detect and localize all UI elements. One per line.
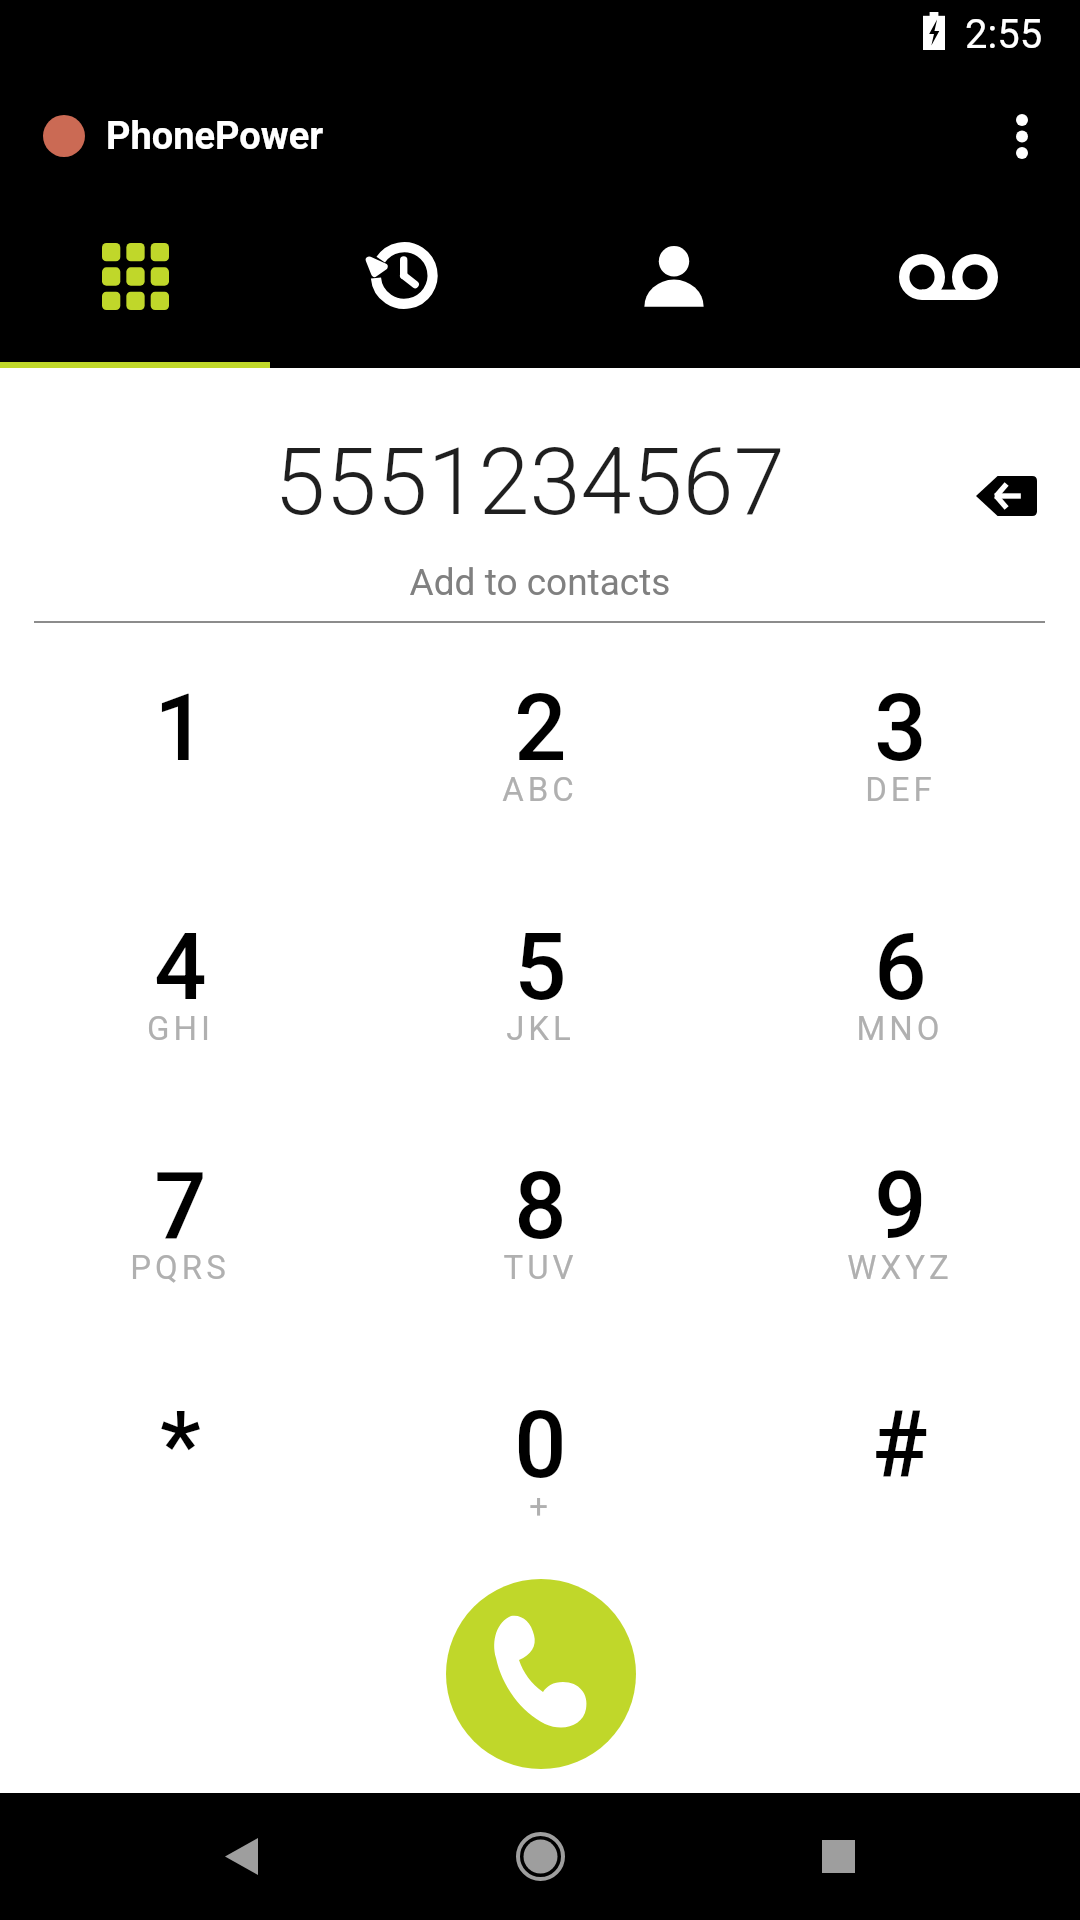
staticText: ABC	[502, 770, 578, 809]
staticText: *	[160, 1392, 201, 1500]
staticText: JKL	[506, 1009, 575, 1048]
staticText: WXYZ	[847, 1248, 953, 1287]
staticText: #	[872, 1392, 928, 1500]
staticText: 1	[154, 675, 207, 783]
staticText: 8	[514, 1153, 567, 1261]
button[interactable]: Contacts	[540, 190, 810, 362]
staticText: PQRS	[130, 1248, 230, 1287]
button[interactable]: Recent apps	[778, 1793, 898, 1920]
staticText: PhonePower	[106, 114, 324, 159]
staticText: 3	[874, 675, 927, 783]
staticText: 5	[514, 914, 567, 1022]
button[interactable]: *	[0, 1374, 360, 1613]
button[interactable]: 7	[0, 1135, 360, 1374]
staticText: 6	[874, 914, 927, 1022]
staticText: 7	[154, 1153, 207, 1261]
button[interactable]: 1	[0, 657, 360, 896]
button[interactable]: Call	[446, 1579, 636, 1769]
button[interactable]: 0	[360, 1374, 720, 1613]
button[interactable]: 3	[720, 657, 1080, 896]
button[interactable]: 9	[720, 1135, 1080, 1374]
button[interactable]: #	[720, 1374, 1080, 1613]
staticText: 2:55	[965, 11, 1043, 58]
button[interactable]: Back	[181, 1793, 301, 1920]
button[interactable]: Recent calls	[270, 190, 540, 362]
button[interactable]: 4	[0, 896, 360, 1135]
staticText: GHI	[147, 1009, 214, 1048]
staticText: 4	[154, 914, 207, 1022]
staticText: MNO	[856, 1009, 944, 1048]
button[interactable]: More options	[974, 97, 1070, 175]
button[interactable]: Voicemail	[810, 190, 1080, 362]
staticText: 9	[874, 1153, 927, 1261]
staticText: 2	[514, 675, 567, 783]
button[interactable]: 8	[360, 1135, 720, 1374]
button[interactable]: 6	[720, 896, 1080, 1135]
staticText: 5551234567	[63, 429, 996, 537]
button[interactable]: Add to contacts	[0, 561, 1080, 604]
staticText: +	[529, 1487, 552, 1526]
button[interactable]: Backspace	[950, 450, 1062, 542]
button[interactable]: 2	[360, 657, 720, 896]
staticText: TUV	[503, 1248, 578, 1287]
button[interactable]: Home	[480, 1793, 600, 1920]
staticText: 0	[514, 1392, 567, 1500]
button[interactable]: Dialpad	[0, 190, 270, 362]
button[interactable]: 5	[360, 896, 720, 1135]
staticText: DEF	[865, 770, 936, 809]
